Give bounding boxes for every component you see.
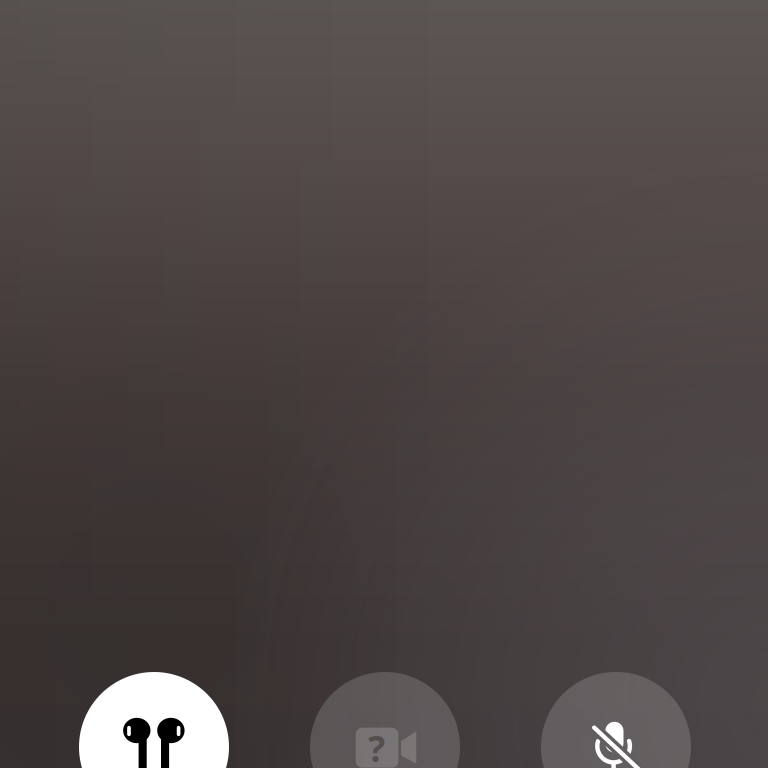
button[interactable]: Unmute microphone (541, 672, 691, 768)
button[interactable]: Turn camera on (310, 672, 460, 768)
button[interactable]: Audio output, AirPods (79, 672, 229, 768)
